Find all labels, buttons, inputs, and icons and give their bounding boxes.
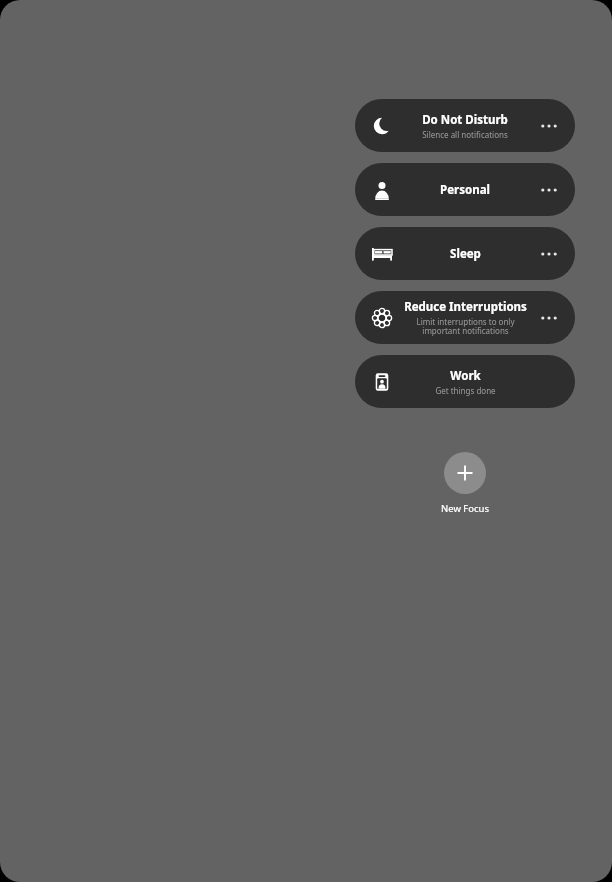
- staticText: Get things done: [435, 385, 496, 396]
- staticText: Personal: [440, 182, 490, 198]
- button[interactable]: Do Not Disturb: [355, 99, 575, 152]
- button[interactable]: New Focus: [425, 452, 505, 515]
- button[interactable]: Work: [355, 355, 575, 408]
- staticText: Limit interruptions to only important no…: [416, 316, 515, 337]
- staticText: Work: [450, 368, 481, 384]
- staticText: Do Not Disturb: [422, 112, 508, 128]
- button[interactable]: More options for Reduce Interruptions: [534, 303, 564, 333]
- staticText: Reduce Interruptions: [404, 299, 527, 315]
- button[interactable]: Reduce Interruptions: [355, 291, 575, 344]
- staticText: Silence all notifications: [422, 129, 508, 140]
- staticText: Sleep: [450, 246, 481, 262]
- button[interactable]: More options for Personal: [534, 175, 564, 205]
- button[interactable]: More options for Do Not Disturb: [534, 111, 564, 141]
- button[interactable]: More options for Sleep: [534, 239, 564, 269]
- button[interactable]: Personal: [355, 163, 575, 216]
- button[interactable]: Sleep: [355, 227, 575, 280]
- staticText: New Focus: [441, 502, 489, 515]
